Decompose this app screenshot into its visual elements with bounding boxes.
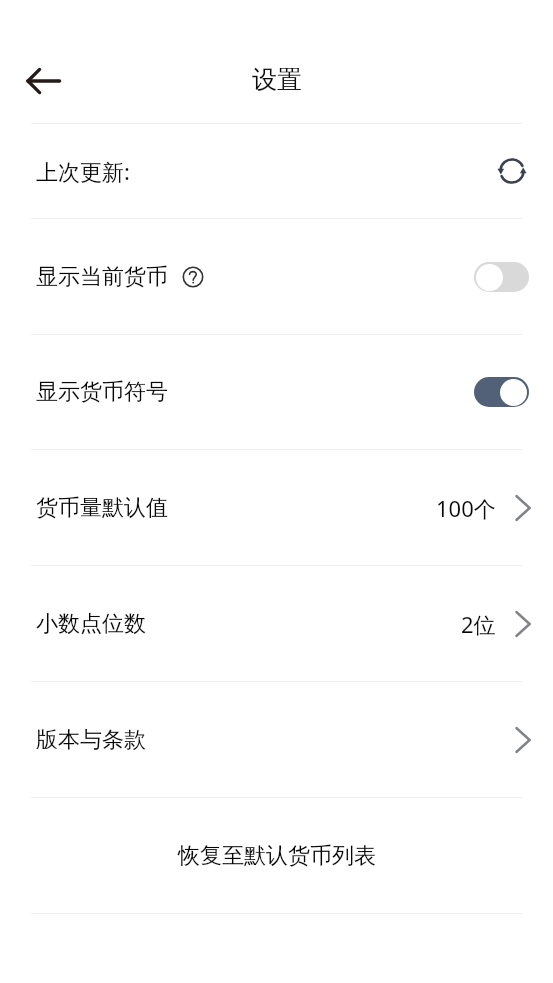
button[interactable]: 版本与条款 [0,682,553,797]
staticText: 小数点位数 [36,610,146,638]
staticText: 100个 [436,493,496,523]
staticText: 显示货币符号 [36,378,168,406]
button[interactable]: Back [8,45,80,117]
staticText: 货币量默认值 [36,494,168,522]
button[interactable]: Refresh [499,158,529,184]
button[interactable]: 显示当前货币 [0,219,553,334]
button[interactable]: 货币量默认值 [0,450,553,565]
staticText: 设置 [252,64,302,95]
staticText: 恢复至默认货币列表 [178,842,376,870]
button[interactable]: 显示货币符号 [0,335,553,449]
button[interactable]: 恢复至默认货币列表 [0,798,553,913]
staticText: 上次更新: [36,156,130,186]
staticText: 版本与条款 [36,726,146,754]
button[interactable]: 小数点位数 [0,566,553,681]
staticText: 2位 [461,609,496,639]
staticText: 显示当前货币 [36,263,168,291]
button[interactable]: 上次更新: [0,124,553,218]
button[interactable]: Toggle on [474,377,529,407]
button[interactable]: Toggle off [474,262,529,292]
